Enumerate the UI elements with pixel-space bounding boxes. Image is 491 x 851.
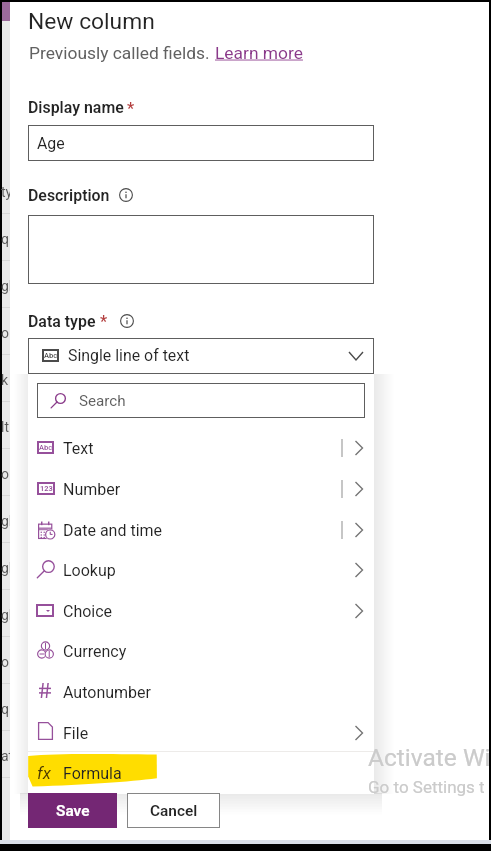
staticText: Abc bbox=[44, 351, 58, 360]
staticText: Display name bbox=[28, 98, 124, 117]
staticText: Go to Settings t bbox=[368, 777, 485, 797]
staticText: at bbox=[1, 748, 14, 764]
button[interactable]: Cancel bbox=[127, 793, 220, 828]
staticText: Formula bbox=[63, 764, 122, 783]
staticText: File bbox=[63, 724, 89, 743]
staticText: lt bbox=[1, 419, 9, 435]
button[interactable]: Save bbox=[28, 793, 117, 828]
staticText: gl bbox=[1, 513, 13, 529]
staticText: Currency bbox=[63, 642, 127, 661]
staticText: Autonumber bbox=[63, 683, 151, 702]
button[interactable]: Lookup bbox=[28, 550, 374, 590]
staticText: fx bbox=[37, 763, 51, 783]
staticText: gl bbox=[1, 278, 13, 294]
button[interactable] bbox=[28, 125, 374, 161]
button[interactable]: fx bbox=[28, 753, 374, 793]
other: Expand Number bbox=[355, 482, 363, 496]
staticText: oi bbox=[1, 466, 13, 482]
staticText: oi bbox=[1, 654, 13, 670]
other: Expand File bbox=[355, 726, 363, 740]
other: Expand Lookup bbox=[355, 563, 363, 577]
staticText: Activate Wi bbox=[368, 743, 491, 772]
staticText: Age bbox=[37, 134, 65, 153]
other: Expand Date and time bbox=[355, 523, 363, 537]
staticText: q bbox=[1, 701, 9, 717]
button[interactable]: File bbox=[28, 713, 374, 753]
staticText: Choice bbox=[63, 602, 113, 621]
staticText: Date and time bbox=[63, 521, 163, 540]
button[interactable]: Learn more bbox=[0, 0, 88, 20]
button[interactable] bbox=[37, 383, 365, 418]
staticText: Lookup bbox=[63, 561, 116, 580]
button[interactable]: Choice bbox=[28, 591, 374, 631]
other: Expand Choice bbox=[355, 604, 363, 618]
other: Expand Text bbox=[355, 441, 363, 455]
staticText: gl bbox=[1, 607, 13, 623]
other: Open data type list bbox=[349, 352, 363, 360]
staticText: k bbox=[1, 372, 9, 388]
staticText: New column bbox=[28, 8, 155, 35]
button[interactable]: Currency bbox=[28, 631, 374, 671]
staticText: Description bbox=[28, 186, 110, 205]
staticText: Text bbox=[63, 439, 94, 458]
button[interactable] bbox=[28, 215, 374, 284]
staticText: o bbox=[1, 325, 9, 341]
button[interactable] bbox=[28, 338, 374, 374]
staticText: q bbox=[1, 231, 9, 247]
staticText: Previously called fields. bbox=[29, 43, 210, 63]
staticText: * bbox=[127, 99, 135, 118]
staticText: Single line of text bbox=[68, 346, 190, 365]
staticText: Abc bbox=[39, 443, 53, 452]
staticText: * bbox=[100, 312, 108, 331]
staticText: gl bbox=[1, 560, 13, 576]
button[interactable]: Abc bbox=[28, 428, 374, 468]
staticText: Save bbox=[56, 802, 90, 820]
button[interactable]: Date and time bbox=[28, 510, 374, 550]
staticText: Number bbox=[63, 480, 121, 499]
staticText: Data type bbox=[28, 312, 96, 331]
staticText: Cancel bbox=[150, 802, 198, 820]
staticText: 123 bbox=[40, 484, 53, 493]
button[interactable]: 123 bbox=[28, 469, 374, 509]
staticText: Search bbox=[79, 392, 126, 410]
button[interactable]: Autonumber bbox=[28, 672, 374, 712]
staticText: ty bbox=[1, 184, 13, 200]
